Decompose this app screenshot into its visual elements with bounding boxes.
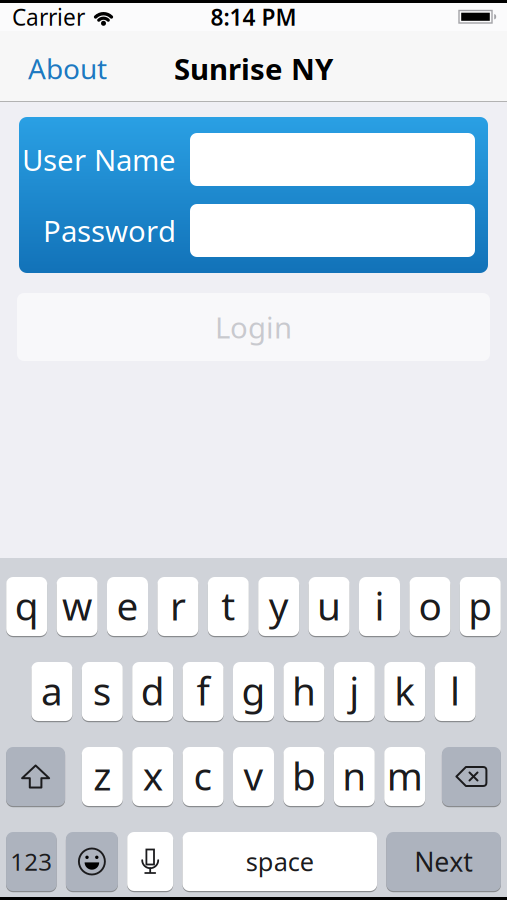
- staticText: d: [141, 665, 165, 716]
- button[interactable]: z: [82, 747, 123, 806]
- button[interactable]: j: [334, 662, 375, 721]
- button[interactable]: Dictation: [127, 832, 173, 891]
- staticText: l: [450, 665, 460, 716]
- button[interactable]: o: [409, 577, 450, 636]
- button[interactable]: m: [384, 747, 425, 806]
- button[interactable]: About: [28, 50, 107, 87]
- button[interactable]: l: [435, 662, 476, 721]
- staticText: h: [292, 665, 316, 716]
- button[interactable]: c: [183, 747, 224, 806]
- button[interactable]: b: [283, 747, 324, 806]
- button[interactable]: t: [208, 577, 249, 636]
- button[interactable]: h: [283, 662, 324, 721]
- button[interactable]: u: [309, 577, 350, 636]
- staticText: i: [374, 580, 384, 631]
- staticText: Login: [215, 307, 292, 346]
- staticText: n: [342, 750, 366, 801]
- staticText: z: [93, 750, 111, 801]
- staticText: u: [317, 580, 341, 631]
- staticText: m: [387, 750, 423, 801]
- staticText: q: [15, 580, 39, 631]
- staticText: e: [116, 580, 138, 631]
- button[interactable]: Shift: [6, 747, 65, 806]
- staticText: f: [197, 665, 210, 716]
- button[interactable]: a: [31, 662, 72, 721]
- staticText: c: [194, 750, 213, 801]
- staticText: x: [143, 750, 163, 801]
- staticText: a: [41, 665, 63, 716]
- staticText: r: [170, 580, 186, 631]
- button[interactable]: p: [460, 577, 501, 636]
- button[interactable]: i: [359, 577, 400, 636]
- staticText: o: [418, 580, 441, 631]
- button[interactable]: Login: [17, 293, 490, 361]
- button[interactable]: k: [384, 662, 425, 721]
- button[interactable]: Next: [386, 832, 501, 891]
- button[interactable]: g: [233, 662, 274, 721]
- button[interactable]: Emoji: [66, 832, 118, 891]
- button[interactable]: User Name: [190, 133, 475, 186]
- button[interactable]: q: [6, 577, 47, 636]
- button[interactable]: n: [334, 747, 375, 806]
- staticText: Carrier: [12, 2, 85, 32]
- button[interactable]: r: [157, 577, 198, 636]
- staticText: Next: [414, 844, 473, 879]
- staticText: j: [349, 665, 359, 716]
- staticText: 8:14 PM: [210, 2, 296, 32]
- button[interactable]: 123: [6, 832, 57, 891]
- button[interactable]: f: [183, 662, 224, 721]
- staticText: w: [62, 580, 92, 631]
- button[interactable]: d: [132, 662, 173, 721]
- staticText: v: [243, 750, 263, 801]
- staticText: 123: [10, 846, 52, 877]
- button[interactable]: e: [107, 577, 148, 636]
- button[interactable]: space: [182, 832, 377, 891]
- staticText: s: [93, 665, 112, 716]
- staticText: k: [394, 665, 415, 716]
- button[interactable]: Delete: [442, 747, 501, 806]
- staticText: g: [241, 665, 265, 716]
- button[interactable]: s: [82, 662, 123, 721]
- staticText: b: [292, 750, 316, 801]
- button[interactable]: x: [132, 747, 173, 806]
- staticText: User Name: [22, 140, 176, 179]
- button[interactable]: y: [258, 577, 299, 636]
- button[interactable]: w: [57, 577, 98, 636]
- staticText: Sunrise NY: [174, 49, 333, 88]
- staticText: About: [28, 50, 107, 87]
- staticText: p: [468, 580, 492, 631]
- button[interactable]: v: [233, 747, 274, 806]
- staticText: y: [269, 580, 289, 631]
- staticText: t: [221, 580, 235, 631]
- staticText: space: [246, 845, 314, 878]
- button[interactable]: Password: [190, 204, 475, 257]
- staticText: Password: [43, 211, 176, 250]
